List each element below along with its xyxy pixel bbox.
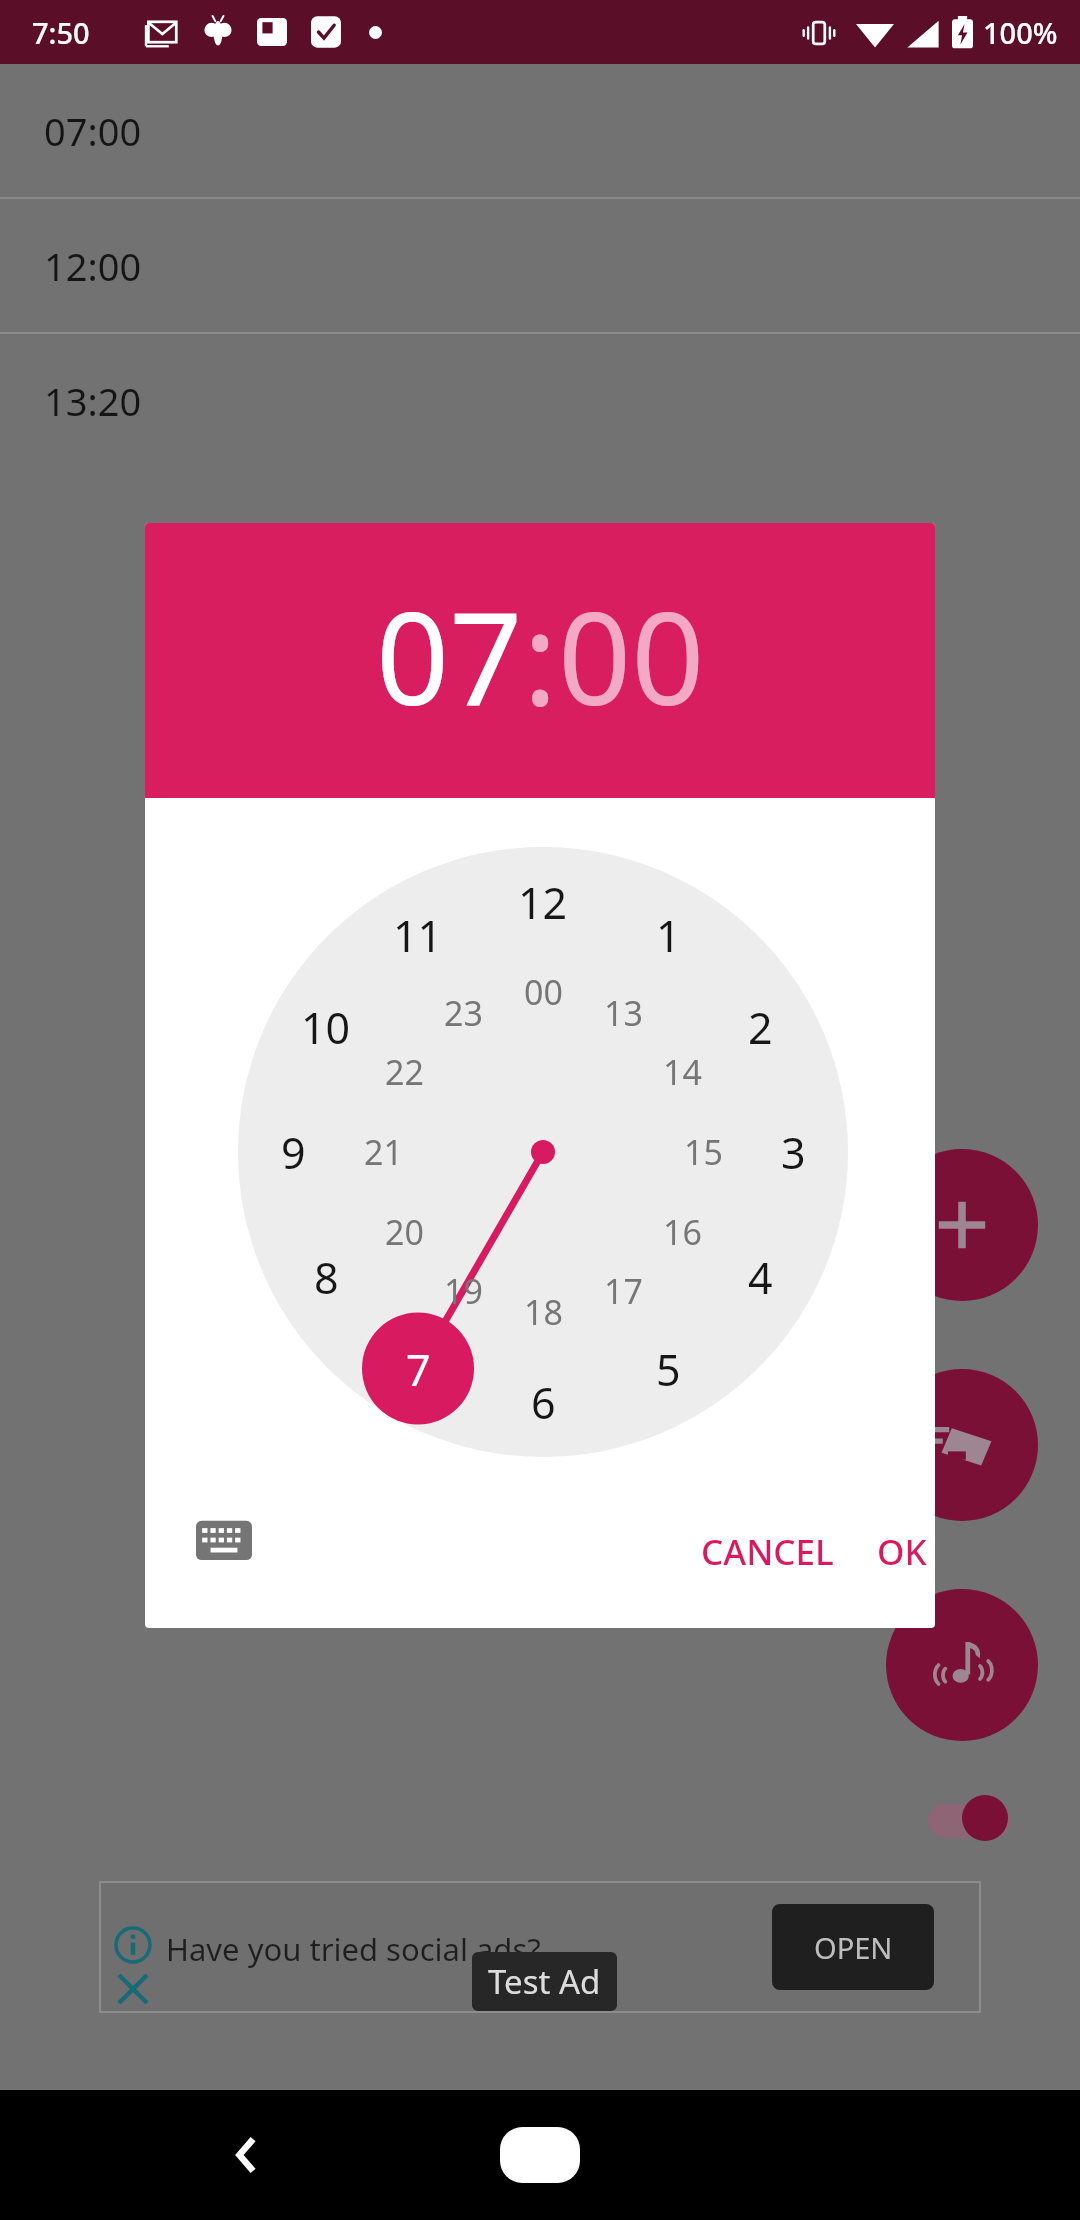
- staticText: 00: [558, 568, 705, 742]
- button[interactable]: OK: [877, 1528, 927, 1576]
- button[interactable]: 21: [339, 1122, 427, 1182]
- button[interactable]: 19: [419, 1261, 507, 1321]
- button[interactable]: 14: [638, 1042, 726, 1102]
- button[interactable]: 10: [282, 993, 370, 1061]
- staticText: 8: [314, 1248, 339, 1307]
- button[interactable]: 7: [374, 1335, 462, 1403]
- button[interactable]: 23: [419, 983, 507, 1043]
- button[interactable]: 16: [638, 1202, 726, 1262]
- button[interactable]: 00: [499, 962, 587, 1022]
- button[interactable]: 17: [579, 1261, 667, 1321]
- staticText: 2: [748, 998, 773, 1057]
- button[interactable]: 15: [659, 1122, 747, 1182]
- button[interactable]: 07: [376, 568, 523, 742]
- staticText: 4: [748, 1248, 773, 1307]
- staticText: 13: [604, 990, 643, 1036]
- button[interactable]: Back: [200, 2108, 294, 2202]
- button[interactable]: 11: [374, 901, 462, 969]
- staticText: 17: [604, 1268, 643, 1314]
- staticText: 1: [656, 906, 681, 965]
- button[interactable]: Add alarm: [886, 1149, 1038, 1301]
- staticText: 07:00: [44, 105, 142, 157]
- button[interactable]: 13: [579, 983, 667, 1043]
- button[interactable]: 18: [499, 1282, 587, 1342]
- staticText: 21: [364, 1129, 403, 1175]
- staticText: 7: [406, 1340, 431, 1399]
- button[interactable]: 6: [499, 1368, 587, 1436]
- staticText: 3: [781, 1123, 806, 1182]
- button[interactable]: 12:00: [0, 199, 1080, 332]
- staticText: 11: [393, 906, 443, 965]
- staticText: :: [523, 568, 558, 742]
- staticText: 19: [444, 1268, 483, 1314]
- staticText: CANCEL: [701, 1528, 834, 1576]
- button[interactable]: 4: [716, 1243, 804, 1311]
- button[interactable]: 20: [360, 1202, 448, 1262]
- staticText: 15: [684, 1129, 723, 1175]
- staticText: 12: [518, 873, 568, 932]
- button[interactable]: Ringtone: [886, 1589, 1038, 1741]
- staticText: 5: [656, 1340, 681, 1399]
- staticText: 18: [524, 1289, 563, 1335]
- button[interactable]: 5: [624, 1335, 712, 1403]
- button[interactable]: 8: [282, 1243, 370, 1311]
- button[interactable]: Have you tried social ads?: [100, 1882, 980, 2012]
- staticText: 100%: [983, 13, 1058, 52]
- staticText: 07: [376, 568, 523, 742]
- button[interactable]: Edit note: [886, 1369, 1038, 1521]
- button[interactable]: OPEN: [772, 1904, 934, 1990]
- staticText: 7:50: [32, 13, 90, 52]
- staticText: OK: [877, 1528, 927, 1576]
- button[interactable]: 12: [499, 868, 587, 936]
- staticText: 14: [663, 1049, 702, 1095]
- staticText: Have you tried social ads?: [166, 1928, 541, 1970]
- staticText: 13:20: [44, 375, 142, 427]
- staticText: Test Ad: [488, 1959, 601, 2004]
- staticText: 10: [301, 998, 351, 1057]
- staticText: 16: [663, 1209, 702, 1255]
- button[interactable]: 00: [558, 568, 705, 742]
- button[interactable]: 07:00: [0, 64, 1080, 197]
- button[interactable]: 9: [249, 1118, 337, 1186]
- staticText: 22: [385, 1049, 424, 1095]
- button[interactable]: Switch to text input: [191, 1508, 257, 1574]
- staticText: 6: [531, 1373, 556, 1432]
- button[interactable]: 13:20: [0, 334, 1080, 467]
- staticText: 23: [444, 990, 483, 1036]
- button[interactable]: 1: [624, 901, 712, 969]
- button[interactable]: 2: [716, 993, 804, 1061]
- button[interactable]: 3: [749, 1118, 837, 1186]
- staticText: OPEN: [814, 1928, 893, 1967]
- staticText: 12:00: [44, 240, 142, 292]
- staticText: 00: [524, 969, 563, 1015]
- staticText: 9: [281, 1123, 306, 1182]
- button[interactable]: 22: [360, 1042, 448, 1102]
- staticText: 20: [385, 1209, 424, 1255]
- button[interactable]: Home: [475, 2120, 605, 2190]
- button[interactable]: CANCEL: [701, 1528, 834, 1576]
- button[interactable]: Toggle: [928, 1804, 1010, 1838]
